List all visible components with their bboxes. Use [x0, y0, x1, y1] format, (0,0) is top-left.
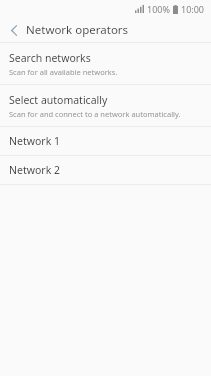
- button[interactable]: Network 2: [0, 156, 211, 184]
- staticText: Network operators: [26, 22, 129, 38]
- button[interactable]: Select automatically: [0, 85, 211, 126]
- button[interactable]: Search networks: [0, 43, 211, 84]
- staticText: Scan for and connect to a network automa…: [9, 109, 181, 119]
- staticText: Network 2: [9, 163, 60, 177]
- staticText: 100%: [147, 3, 170, 15]
- staticText: Search networks: [9, 51, 91, 65]
- button[interactable]: Back: [5, 21, 23, 39]
- staticText: Select automatically: [9, 93, 108, 107]
- staticText: 10:00: [181, 3, 205, 15]
- button[interactable]: Network 1: [0, 127, 211, 155]
- staticText: Network 1: [9, 134, 60, 148]
- staticText: Scan for all available networks.: [9, 67, 118, 77]
